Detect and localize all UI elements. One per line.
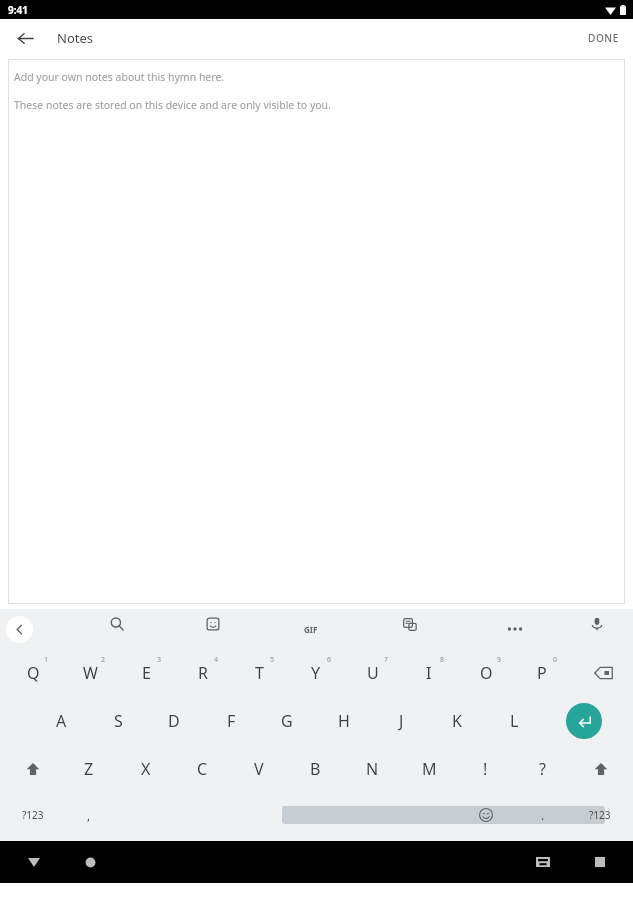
staticText: !: [483, 758, 488, 780]
staticText: X: [141, 758, 151, 780]
button[interactable]: T: [235, 649, 283, 697]
staticText: F: [227, 710, 236, 732]
staticText: C: [197, 758, 208, 780]
button[interactable]: V: [235, 745, 283, 793]
button[interactable]: Switch keyboard: [527, 846, 559, 878]
staticText: 5: [270, 655, 275, 665]
staticText: Y: [311, 662, 321, 684]
staticText: N: [366, 758, 379, 780]
button[interactable]: DONE: [574, 23, 633, 53]
staticText: G: [281, 710, 293, 732]
button[interactable]: ?: [518, 745, 566, 793]
button[interactable]: Shift: [8, 745, 58, 793]
staticText: Add your own notes about this hymn here.: [14, 70, 225, 84]
staticText: Z: [84, 758, 94, 780]
staticText: L: [510, 710, 519, 732]
button[interactable]: I: [405, 649, 453, 697]
button[interactable]: A: [37, 697, 85, 745]
button[interactable]: P: [518, 649, 566, 697]
staticText: O: [480, 662, 493, 684]
staticText: 3: [157, 655, 162, 665]
button[interactable]: S: [94, 697, 142, 745]
staticText: J: [399, 710, 404, 732]
button[interactable]: Shift: [576, 745, 626, 793]
button[interactable]: Back: [10, 23, 40, 53]
button[interactable]: ?123: [574, 793, 626, 837]
staticText: ?123: [22, 808, 44, 822]
staticText: P: [537, 662, 547, 684]
button[interactable]: !: [461, 745, 509, 793]
staticText: 9:41: [8, 3, 28, 17]
button[interactable]: Space: [282, 806, 605, 824]
button[interactable]: Emoji sticker: [198, 609, 228, 639]
button[interactable]: Q: [9, 649, 57, 697]
button[interactable]: Add your own notes about this hymn here.: [8, 59, 625, 604]
staticText: 9: [497, 655, 502, 665]
staticText: Q: [27, 662, 40, 684]
staticText: 0: [553, 655, 558, 665]
button[interactable]: Recent apps: [584, 846, 616, 878]
button[interactable]: K: [433, 697, 481, 745]
button[interactable]: H: [320, 697, 368, 745]
button[interactable]: GIF: [296, 614, 326, 644]
staticText: K: [452, 710, 462, 732]
button[interactable]: Y: [292, 649, 340, 697]
staticText: I: [426, 662, 432, 684]
button[interactable]: Expand toolbar: [6, 616, 33, 643]
staticText: 7: [384, 655, 389, 665]
button[interactable]: Emoji: [465, 793, 507, 837]
button[interactable]: .: [522, 793, 564, 837]
button[interactable]: U: [349, 649, 397, 697]
button[interactable]: F: [207, 697, 255, 745]
staticText: ?: [539, 758, 546, 780]
staticText: W: [83, 662, 98, 684]
staticText: 1: [44, 655, 49, 665]
button[interactable]: B: [291, 745, 339, 793]
staticText: R: [198, 662, 208, 684]
staticText: S: [114, 710, 123, 732]
staticText: M: [422, 758, 437, 780]
button[interactable]: Hide keyboard: [18, 846, 50, 878]
staticText: T: [255, 662, 264, 684]
button[interactable]: J: [377, 697, 425, 745]
button[interactable]: R: [179, 649, 227, 697]
staticText: 6: [327, 655, 332, 665]
staticText: E: [142, 662, 151, 684]
staticText: D: [168, 710, 180, 732]
button[interactable]: Home: [74, 846, 106, 878]
button[interactable]: E: [122, 649, 170, 697]
button[interactable]: ?123: [8, 793, 58, 837]
button[interactable]: Backspace: [578, 649, 628, 697]
button[interactable]: C: [178, 745, 226, 793]
button[interactable]: L: [490, 697, 538, 745]
button[interactable]: W: [66, 649, 114, 697]
button[interactable]: More options: [500, 614, 530, 644]
staticText: These notes are stored on this device an…: [14, 98, 331, 112]
staticText: B: [310, 758, 321, 780]
button[interactable]: M: [405, 745, 453, 793]
staticText: ?123: [589, 808, 611, 822]
staticText: U: [367, 662, 379, 684]
staticText: V: [254, 758, 264, 780]
button[interactable]: O: [462, 649, 510, 697]
staticText: DONE: [588, 31, 619, 45]
staticText: 8: [440, 655, 445, 665]
button[interactable]: X: [122, 745, 170, 793]
staticText: 4: [214, 655, 219, 665]
button[interactable]: N: [348, 745, 396, 793]
button[interactable]: Voice input: [582, 609, 612, 639]
staticText: .: [541, 807, 545, 823]
button[interactable]: Search: [102, 609, 132, 639]
button[interactable]: G: [263, 697, 311, 745]
staticText: Notes: [57, 29, 93, 47]
button[interactable]: ,: [66, 793, 112, 837]
staticText: ,: [87, 807, 91, 823]
staticText: 2: [101, 655, 106, 665]
staticText: A: [56, 710, 67, 732]
staticText: GIF: [304, 624, 318, 635]
button[interactable]: Enter: [566, 703, 602, 739]
button[interactable]: Z: [65, 745, 113, 793]
button[interactable]: D: [150, 697, 198, 745]
button[interactable]: Translate: [395, 609, 425, 639]
staticText: H: [338, 710, 350, 732]
